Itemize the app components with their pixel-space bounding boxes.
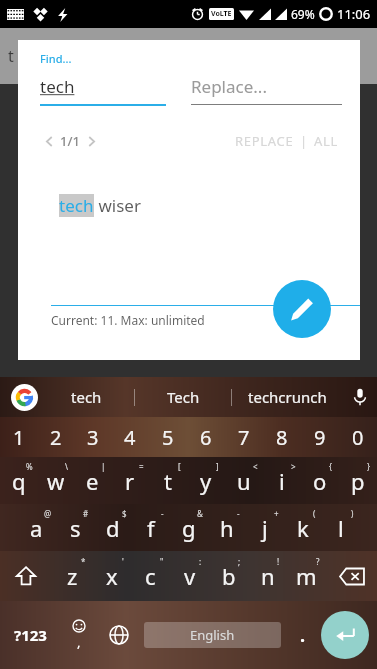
staticText: l bbox=[338, 513, 344, 543]
button[interactable]: t bbox=[149, 457, 187, 504]
button[interactable]: tech bbox=[38, 377, 134, 417]
staticText: , bbox=[77, 633, 81, 651]
staticText: 2 bbox=[50, 424, 62, 451]
button[interactable]: r bbox=[111, 457, 149, 504]
button[interactable]: techcrunch bbox=[232, 377, 343, 417]
staticText: p bbox=[351, 466, 365, 496]
staticText: Current: 11. Max: unlimited bbox=[51, 312, 205, 328]
button[interactable]: 5 bbox=[149, 417, 187, 457]
staticText: tech bbox=[40, 75, 75, 98]
button[interactable]: Replace... bbox=[191, 75, 342, 105]
staticText: tech bbox=[71, 387, 102, 407]
button[interactable]: Backspace bbox=[326, 551, 377, 601]
button[interactable]: m bbox=[287, 551, 326, 601]
staticText: % bbox=[26, 461, 33, 472]
button[interactable]: v bbox=[170, 551, 209, 601]
button[interactable]: b bbox=[209, 551, 248, 601]
button[interactable]: x bbox=[92, 551, 131, 601]
button[interactable]: Emoji bbox=[60, 601, 98, 669]
button[interactable]: g bbox=[170, 504, 208, 551]
button[interactable]: 0 bbox=[339, 417, 377, 457]
button[interactable]: 4 bbox=[111, 417, 149, 457]
staticText: 8 bbox=[276, 424, 288, 451]
staticText: 1 bbox=[13, 424, 25, 451]
staticText: * bbox=[81, 556, 86, 567]
staticText: 3 bbox=[87, 424, 99, 451]
staticText: REPLACE bbox=[235, 132, 294, 150]
button[interactable]: y bbox=[187, 457, 225, 504]
button[interactable]: k bbox=[284, 504, 322, 551]
button[interactable]: l bbox=[322, 504, 360, 551]
staticText: ?123 bbox=[14, 625, 47, 645]
button[interactable]: i bbox=[263, 457, 301, 504]
button[interactable]: s bbox=[56, 504, 94, 551]
staticText: y bbox=[200, 466, 212, 496]
button[interactable]: f bbox=[132, 504, 170, 551]
button[interactable]: 2 bbox=[37, 417, 74, 457]
button[interactable]: tech bbox=[40, 75, 191, 106]
button[interactable]: 9 bbox=[301, 417, 339, 457]
button[interactable]: English bbox=[144, 622, 281, 648]
button[interactable]: Edit bbox=[273, 280, 331, 338]
button[interactable]: ?123 bbox=[0, 601, 60, 669]
button[interactable]: 1 bbox=[0, 417, 37, 457]
button[interactable]: w bbox=[37, 457, 74, 504]
button[interactable]: Google search bbox=[11, 384, 38, 411]
button[interactable]: q bbox=[0, 457, 37, 504]
staticText: } bbox=[367, 461, 371, 472]
staticText: 6 bbox=[200, 424, 212, 451]
staticText: ' bbox=[122, 556, 124, 567]
button[interactable]: Change language bbox=[98, 601, 140, 669]
staticText: i bbox=[279, 466, 285, 496]
button[interactable]: h bbox=[208, 504, 246, 551]
staticText: 5 bbox=[162, 424, 174, 451]
staticText: wiser bbox=[94, 194, 141, 217]
button[interactable]: 8 bbox=[263, 417, 301, 457]
staticText: > bbox=[291, 461, 296, 472]
staticText: English bbox=[190, 626, 235, 644]
staticText: z bbox=[67, 561, 78, 591]
button[interactable]: j bbox=[246, 504, 284, 551]
button[interactable]: ALL bbox=[311, 128, 342, 154]
staticText: Tech bbox=[167, 387, 200, 407]
staticText: | bbox=[300, 132, 308, 150]
button[interactable]: Enter bbox=[321, 611, 369, 659]
button[interactable]: Next match bbox=[80, 130, 102, 152]
button[interactable]: Shift bbox=[0, 551, 52, 601]
staticText: t bbox=[8, 45, 14, 67]
staticText: k bbox=[297, 513, 309, 543]
staticText: techcrunch bbox=[248, 387, 327, 407]
staticText: w bbox=[47, 466, 65, 496]
button[interactable]: u bbox=[225, 457, 263, 504]
staticText: # bbox=[83, 508, 89, 519]
button[interactable]: . bbox=[285, 601, 321, 669]
staticText: 0 bbox=[352, 424, 364, 451]
button[interactable]: Voice input bbox=[343, 377, 377, 417]
button[interactable]: z bbox=[52, 551, 92, 601]
staticText: u bbox=[237, 466, 251, 496]
button[interactable]: 6 bbox=[187, 417, 225, 457]
button[interactable]: Tech bbox=[135, 377, 231, 417]
button[interactable]: d bbox=[94, 504, 132, 551]
staticText: @ bbox=[44, 508, 52, 519]
staticText: - bbox=[237, 508, 240, 519]
button[interactable]: REPLACE bbox=[232, 128, 297, 154]
staticText: d bbox=[106, 513, 120, 543]
staticText: o bbox=[313, 466, 327, 496]
staticText: = bbox=[139, 461, 144, 472]
staticText: " bbox=[160, 556, 164, 567]
staticText: 7 bbox=[238, 424, 250, 451]
button[interactable]: p bbox=[339, 457, 377, 504]
button[interactable]: 3 bbox=[74, 417, 111, 457]
button[interactable]: 7 bbox=[225, 417, 263, 457]
staticText: { bbox=[329, 461, 333, 472]
button[interactable]: n bbox=[248, 551, 287, 601]
button[interactable]: e bbox=[74, 457, 111, 504]
staticText: ) bbox=[351, 508, 354, 519]
button[interactable]: Previous match bbox=[38, 130, 60, 152]
button[interactable]: a bbox=[17, 504, 56, 551]
staticText: q bbox=[12, 466, 26, 496]
button[interactable]: c bbox=[131, 551, 170, 601]
button[interactable]: o bbox=[301, 457, 339, 504]
staticText: ] bbox=[216, 461, 219, 472]
